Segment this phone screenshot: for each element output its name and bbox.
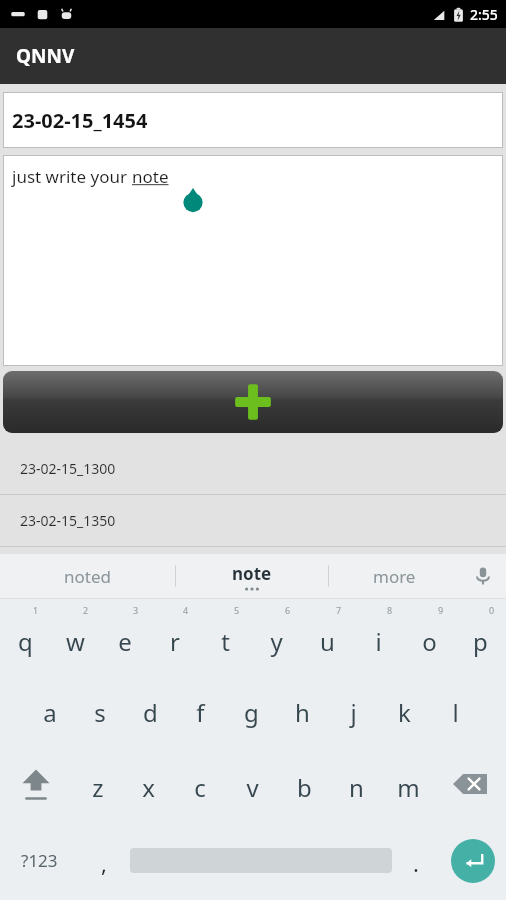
staticText: 2 bbox=[83, 604, 89, 616]
button[interactable]: 9 bbox=[404, 603, 455, 671]
button[interactable]: 23-02-15_1350 bbox=[0, 495, 506, 546]
button[interactable]: v bbox=[226, 746, 278, 821]
button[interactable]: Shift bbox=[0, 746, 72, 821]
staticText: . bbox=[413, 848, 419, 878]
staticText: noted bbox=[64, 565, 111, 588]
staticText: ?123 bbox=[21, 849, 58, 872]
staticText: 4 bbox=[183, 604, 189, 616]
button[interactable]: Enter bbox=[440, 821, 506, 900]
staticText: w bbox=[66, 625, 85, 658]
staticText: note bbox=[132, 165, 169, 188]
button[interactable]: noted bbox=[0, 554, 175, 598]
staticText: o bbox=[422, 625, 437, 658]
staticText: 6 bbox=[285, 604, 291, 616]
staticText: s bbox=[94, 696, 106, 729]
staticText: 23-02-15_1300 bbox=[20, 459, 116, 478]
button[interactable]: f bbox=[175, 671, 226, 746]
button[interactable]: Space bbox=[130, 821, 392, 900]
staticText: a bbox=[43, 696, 57, 729]
button[interactable]: l bbox=[430, 671, 481, 746]
button[interactable]: s bbox=[75, 671, 125, 746]
button[interactable]: , bbox=[78, 821, 130, 900]
staticText: v bbox=[246, 771, 259, 804]
button[interactable]: 7 bbox=[302, 603, 353, 671]
staticText: 3 bbox=[133, 604, 139, 616]
button[interactable]: m bbox=[382, 746, 434, 821]
button[interactable]: just write your bbox=[4, 156, 502, 365]
button[interactable]: 23-02-15_1454 bbox=[4, 93, 502, 147]
staticText: 5 bbox=[234, 604, 240, 616]
staticText: more bbox=[373, 565, 416, 588]
staticText: e bbox=[118, 625, 132, 658]
button[interactable]: c bbox=[174, 746, 226, 821]
button[interactable]: 4 bbox=[150, 603, 200, 671]
staticText: 2:55 bbox=[470, 5, 498, 24]
staticText: t bbox=[221, 625, 230, 658]
button[interactable]: 3 bbox=[100, 603, 150, 671]
staticText: 23-02-15_1350 bbox=[20, 511, 116, 530]
button[interactable]: Add note bbox=[3, 371, 503, 433]
staticText: i bbox=[375, 625, 382, 658]
staticText: 9 bbox=[438, 604, 444, 616]
button[interactable]: j bbox=[328, 671, 379, 746]
button[interactable]: z bbox=[72, 746, 123, 821]
staticText: 7 bbox=[336, 604, 342, 616]
button[interactable]: ?123 bbox=[0, 821, 78, 900]
staticText: 1 bbox=[33, 604, 39, 616]
button[interactable]: note bbox=[176, 554, 328, 598]
button[interactable]: . bbox=[392, 821, 440, 900]
staticText: z bbox=[92, 771, 104, 804]
staticText: j bbox=[350, 696, 357, 729]
staticText: p bbox=[473, 625, 488, 658]
button[interactable]: h bbox=[277, 671, 328, 746]
button[interactable]: 6 bbox=[251, 603, 302, 671]
staticText: 0 bbox=[489, 604, 495, 616]
button[interactable]: k bbox=[379, 671, 430, 746]
staticText: , bbox=[101, 848, 107, 878]
staticText: k bbox=[398, 696, 411, 729]
staticText: d bbox=[143, 696, 158, 729]
staticText: l bbox=[452, 696, 459, 729]
staticText: note bbox=[232, 562, 272, 585]
staticText: r bbox=[170, 625, 180, 658]
staticText: g bbox=[244, 696, 259, 729]
button[interactable]: 23-02-15_1300 bbox=[0, 443, 506, 494]
staticText: f bbox=[196, 696, 205, 729]
button[interactable]: Voice input bbox=[460, 554, 506, 598]
staticText: c bbox=[194, 771, 206, 804]
staticText: m bbox=[397, 771, 420, 804]
button[interactable]: 0 bbox=[455, 603, 506, 671]
button[interactable]: d bbox=[125, 671, 175, 746]
button[interactable]: g bbox=[226, 671, 277, 746]
button[interactable]: 5 bbox=[200, 603, 251, 671]
button[interactable]: 8 bbox=[353, 603, 404, 671]
staticText: h bbox=[295, 696, 310, 729]
button[interactable]: a bbox=[25, 671, 75, 746]
button[interactable]: n bbox=[330, 746, 382, 821]
staticText: 8 bbox=[387, 604, 393, 616]
button[interactable]: 1 bbox=[0, 603, 50, 671]
button[interactable]: 2 bbox=[50, 603, 100, 671]
button[interactable]: b bbox=[278, 746, 330, 821]
staticText: QNNV bbox=[16, 43, 75, 69]
button[interactable]: x bbox=[123, 746, 174, 821]
button[interactable]: Backspace bbox=[434, 746, 506, 821]
staticText: b bbox=[297, 771, 312, 804]
staticText: n bbox=[349, 771, 364, 804]
staticText: just write your bbox=[12, 165, 132, 188]
staticText: x bbox=[142, 771, 155, 804]
staticText: 23-02-15_1454 bbox=[12, 107, 148, 134]
button[interactable]: more bbox=[329, 554, 460, 598]
staticText: u bbox=[320, 625, 335, 658]
staticText: q bbox=[18, 625, 33, 658]
staticText: y bbox=[270, 625, 283, 658]
